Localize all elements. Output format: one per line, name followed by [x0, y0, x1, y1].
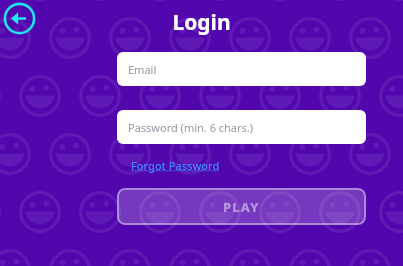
staticText: PLAY — [223, 198, 260, 216]
staticText: Login — [172, 8, 231, 37]
button[interactable]: PLAY — [117, 188, 366, 225]
staticText: Forgot Password — [131, 158, 220, 173]
button[interactable]: Back — [3, 2, 36, 35]
button[interactable]: Password (min. 6 chars.) — [117, 110, 366, 144]
button[interactable]: Email — [117, 52, 366, 86]
staticText: Password (min. 6 chars.) — [128, 120, 254, 135]
button[interactable]: Forgot Password — [130, 155, 221, 176]
staticText: Email — [128, 62, 157, 77]
